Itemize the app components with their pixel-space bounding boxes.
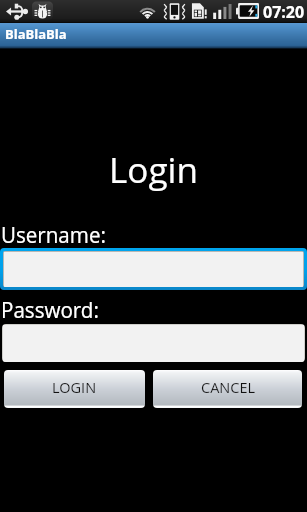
staticText: CANCEL: [201, 378, 255, 398]
staticText: Username:: [1, 219, 107, 249]
staticText: Login: [0, 146, 307, 194]
button[interactable]: LOGIN: [4, 370, 145, 408]
staticText: BlaBlaBla: [5, 25, 67, 43]
staticText: 07:20: [263, 1, 305, 23]
button[interactable]: CANCEL: [153, 370, 302, 408]
staticText: Password:: [1, 294, 99, 324]
staticText: LOGIN: [52, 378, 97, 398]
